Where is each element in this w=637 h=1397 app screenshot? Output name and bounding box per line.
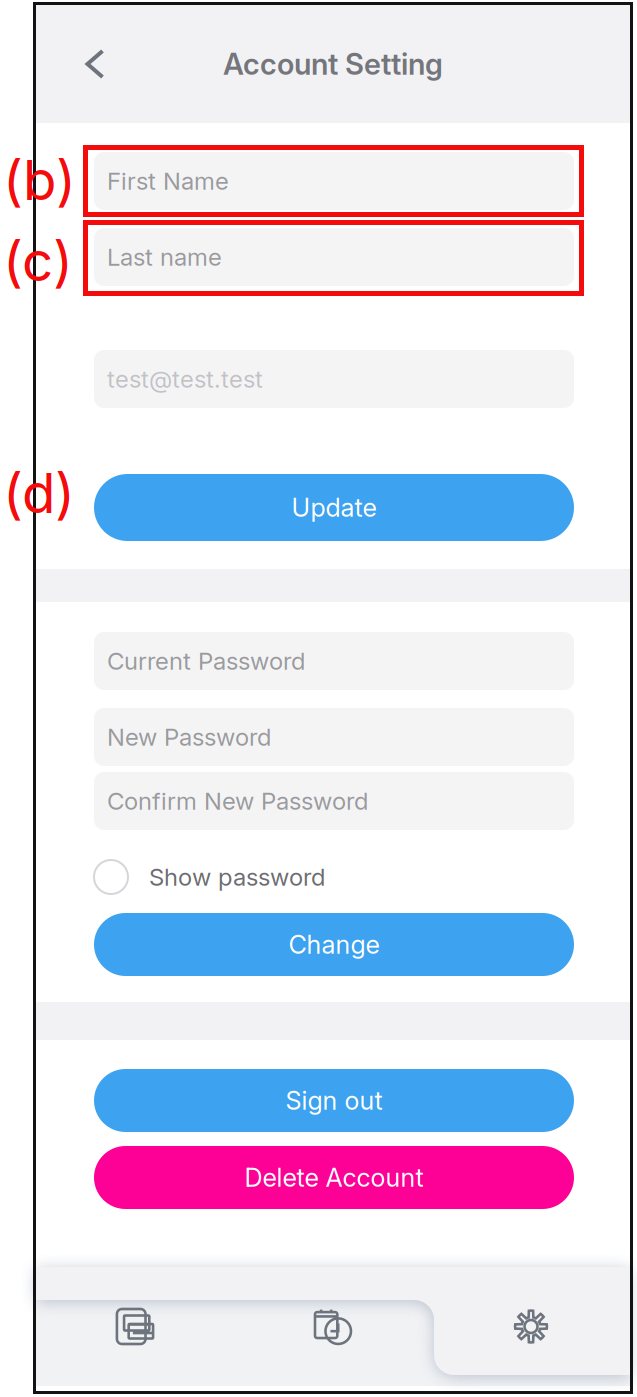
staticText: Change (288, 929, 379, 960)
staticText: Confirm New Password (107, 786, 368, 815)
staticText: New Password (107, 722, 271, 751)
staticText: First Name (107, 166, 229, 195)
button[interactable]: Sign out (94, 1069, 574, 1132)
staticText: Sign out (285, 1085, 382, 1116)
staticText: (d) (3, 460, 75, 526)
staticText: test@test.test (107, 364, 263, 393)
staticText: Last name (107, 242, 222, 271)
staticText: Current Password (107, 646, 305, 675)
staticText: Update (291, 492, 376, 523)
button[interactable]: Documents (36, 1267, 234, 1386)
button[interactable]: Change (94, 913, 574, 976)
button[interactable]: Settings (432, 1267, 630, 1386)
button[interactable]: Show password (94, 860, 128, 894)
button[interactable]: Update (94, 474, 574, 541)
button[interactable]: Back (67, 36, 123, 92)
staticText: (b) (3, 147, 76, 213)
button[interactable]: Schedule (234, 1267, 432, 1386)
button[interactable]: Delete Account (94, 1146, 574, 1209)
staticText: Account Setting (223, 46, 443, 82)
staticText: Show password (149, 862, 325, 891)
staticText: Delete Account (244, 1162, 423, 1193)
staticText: (c) (3, 228, 73, 294)
